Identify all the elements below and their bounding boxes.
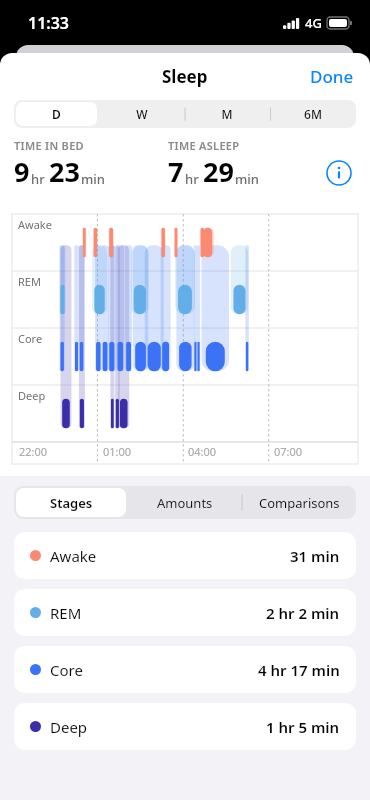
staticText: TIME ASLEEP — [168, 138, 240, 153]
staticText: Awake — [50, 546, 97, 566]
button[interactable]: Core — [14, 646, 356, 693]
staticText: REM — [18, 274, 41, 289]
staticText: Done — [310, 65, 354, 88]
staticText: 04:00 — [188, 444, 217, 459]
staticText: hr — [31, 170, 45, 188]
staticText: 9 — [14, 153, 30, 190]
staticText: W — [136, 106, 148, 122]
staticText: 6M — [304, 106, 322, 122]
staticText: Deep — [18, 388, 46, 403]
staticText: 23 — [49, 153, 80, 190]
staticText: REM — [50, 603, 82, 623]
staticText: 4 hr 17 min — [258, 660, 340, 680]
button[interactable]: Comparisons — [244, 488, 354, 517]
staticText: hr — [185, 170, 199, 188]
button[interactable]: Stages — [16, 488, 126, 517]
staticText: TIME IN BED — [14, 138, 84, 153]
staticText: Core — [50, 660, 83, 680]
button[interactable]: Done — [294, 57, 370, 96]
button[interactable]: More information — [326, 160, 352, 186]
button[interactable]: REM — [14, 589, 356, 636]
button[interactable]: 6M — [272, 102, 354, 126]
staticText: Sleep — [162, 65, 208, 88]
staticText: 01:00 — [103, 444, 132, 459]
staticText: D — [52, 106, 61, 122]
staticText: Deep — [50, 717, 88, 737]
staticText: M — [221, 106, 233, 122]
staticText: min — [81, 170, 105, 188]
button[interactable]: W — [101, 102, 182, 126]
button[interactable]: M — [186, 102, 268, 126]
staticText: 29 — [203, 153, 234, 190]
staticText: 07:00 — [274, 444, 303, 459]
staticText: Core — [18, 331, 43, 346]
staticText: min — [235, 170, 259, 188]
staticText: 31 min — [290, 546, 340, 566]
staticText: Amounts — [157, 494, 213, 512]
staticText: Stages — [50, 494, 93, 512]
button[interactable]: D — [16, 102, 97, 126]
staticText: 4G — [305, 14, 322, 32]
staticText: 2 hr 2 min — [266, 603, 340, 623]
staticText: Comparisons — [259, 494, 340, 512]
button[interactable]: Deep — [14, 703, 356, 750]
staticText: 1 hr 5 min — [266, 717, 340, 737]
button[interactable]: Awake — [14, 532, 356, 579]
staticText: 7 — [168, 153, 184, 190]
staticText: 22:00 — [19, 444, 48, 459]
button[interactable]: Amounts — [130, 488, 240, 517]
staticText: Awake — [18, 217, 52, 232]
staticText: 11:33 — [28, 12, 70, 34]
